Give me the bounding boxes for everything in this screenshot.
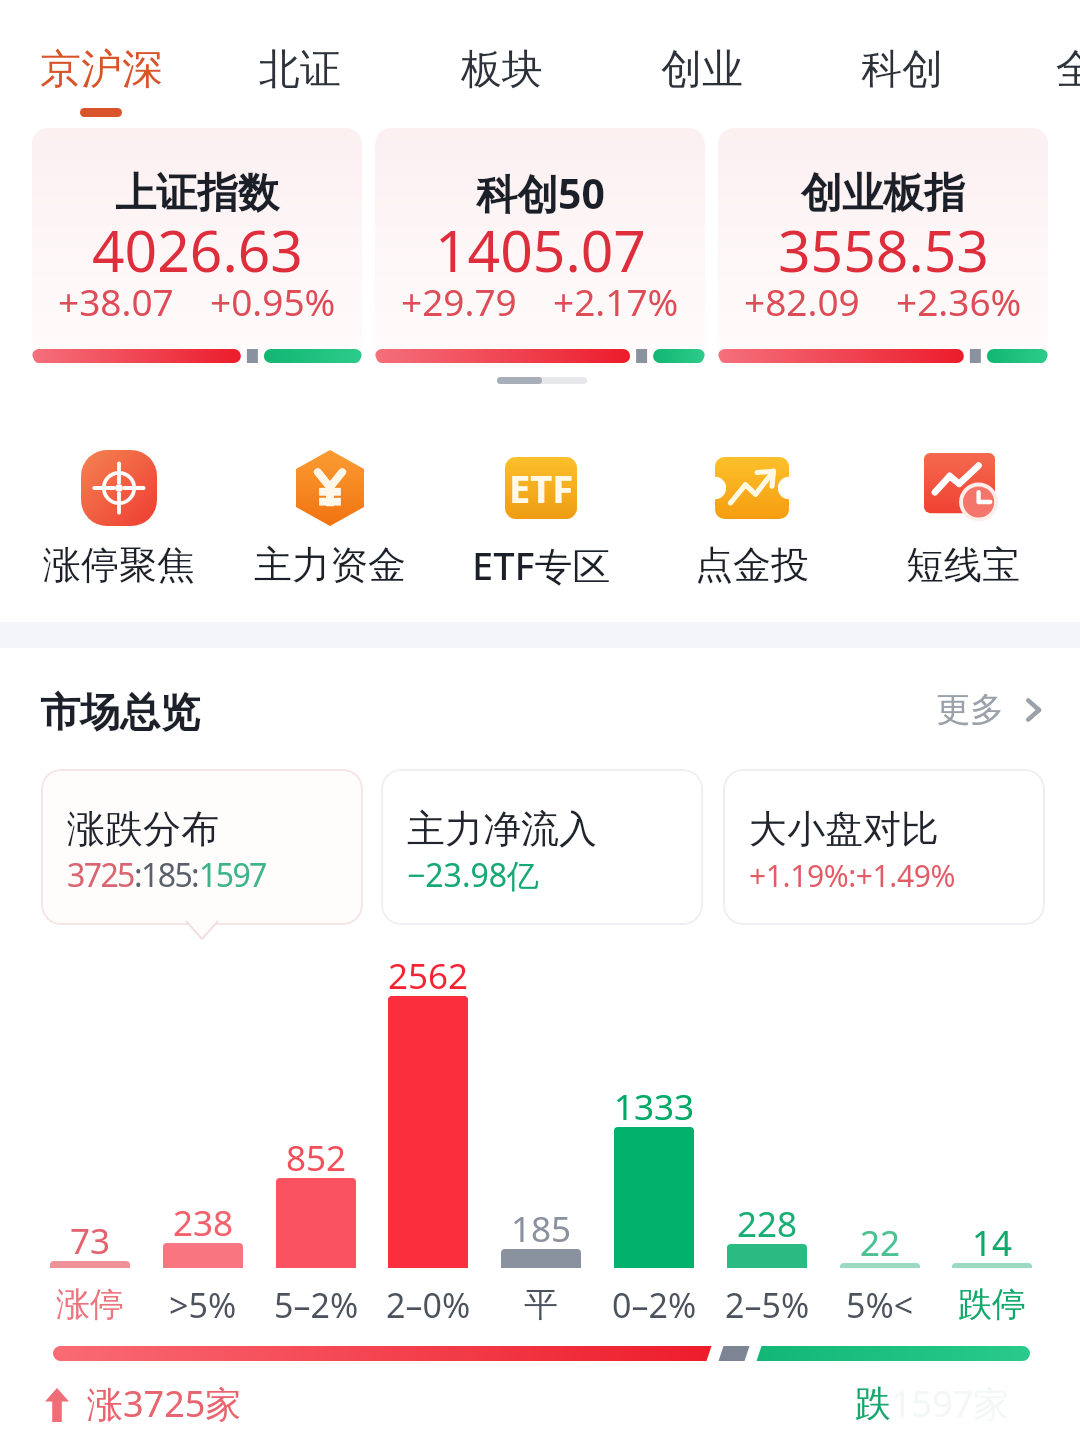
staticText: 3725 [67, 857, 134, 895]
staticText: 点金投 [695, 542, 809, 590]
staticText: 2–5% [725, 1283, 810, 1327]
staticText: 板块 [461, 44, 543, 96]
button[interactable]: 更多 [930, 682, 1054, 738]
staticText: 2–0% [386, 1283, 471, 1327]
staticText: 238 [173, 1201, 234, 1245]
staticText: 创业 [661, 44, 743, 96]
button[interactable]: 京沪深 [21, 25, 181, 115]
staticText: 22 [860, 1221, 901, 1265]
staticText: 市场总览 [40, 684, 200, 740]
staticText: :185: [134, 857, 199, 895]
staticText: +29.79 [401, 278, 517, 326]
button[interactable]: 短线宝 [863, 446, 1063, 606]
staticText: 73 [70, 1219, 111, 1263]
staticText: 涨3725家 [87, 1382, 242, 1428]
button[interactable]: 市场总览 [32, 680, 208, 744]
staticText: 3558.53 [778, 220, 989, 286]
staticText: +1.19%:+1.49% [749, 857, 956, 895]
other: 短线宝 [924, 453, 1002, 523]
button[interactable]: ETF专区 [441, 446, 641, 606]
staticText: 852 [286, 1136, 347, 1180]
staticText: 涨停 [56, 1283, 124, 1327]
staticText: 5%< [846, 1283, 914, 1327]
other: 主力资金 [296, 450, 364, 526]
button[interactable] [41, 769, 363, 925]
staticText: 1597 [199, 857, 266, 895]
staticText: 平 [524, 1283, 558, 1327]
button[interactable]: 全 [996, 25, 1080, 115]
button[interactable]: 科创 [822, 25, 982, 115]
staticText: 涨停聚焦 [43, 542, 195, 590]
button[interactable]: 板块 [422, 25, 582, 115]
button[interactable]: 创业 [622, 25, 782, 115]
button[interactable]: 涨停聚焦 [19, 446, 219, 606]
button[interactable]: 上证指数 [32, 128, 362, 368]
staticText: 短线宝 [906, 542, 1020, 590]
staticText: 2562 [388, 954, 469, 998]
staticText: 4026.63 [92, 220, 303, 286]
staticText: ETF专区 [472, 542, 611, 592]
staticText: 1597家 [891, 1382, 1010, 1428]
staticText: +0.95% [210, 278, 336, 326]
button[interactable]: 创业板指 [718, 128, 1048, 368]
other: ETF专区 [505, 457, 577, 519]
staticText: >5% [169, 1283, 237, 1327]
button[interactable]: 北证 [220, 25, 380, 115]
button[interactable] [723, 769, 1045, 925]
staticText: 跌 [855, 1383, 891, 1427]
staticText: 大小盘对比 [749, 809, 939, 853]
other: 涨停聚焦 [81, 450, 157, 526]
staticText: 跌停 [958, 1283, 1026, 1327]
button[interactable]: 科创50 [375, 128, 705, 368]
staticText: 主力资金 [254, 542, 406, 590]
staticText: 1405.07 [435, 220, 646, 286]
staticText: 涨跌分布 [67, 809, 219, 853]
button[interactable] [381, 769, 703, 925]
staticText: 科创 [861, 44, 943, 96]
other: 点金投 [715, 457, 789, 519]
staticText: 5–2% [274, 1283, 359, 1327]
staticText: +82.09 [744, 278, 860, 326]
staticText: 228 [737, 1202, 798, 1246]
staticText: +2.17% [553, 278, 679, 326]
button[interactable]: 点金投 [652, 446, 852, 606]
staticText: 全 [1056, 44, 1080, 96]
staticText: 科创50 [476, 170, 605, 220]
staticText: 创业板指 [801, 170, 965, 220]
staticText: +38.07 [58, 278, 174, 326]
staticText: 主力净流入 [407, 809, 597, 853]
staticText: −23.98亿 [407, 857, 540, 896]
staticText: 上证指数 [115, 170, 279, 220]
button[interactable]: 主力资金 [230, 446, 430, 606]
staticText: +2.36% [896, 278, 1022, 326]
staticText: 更多 [936, 688, 1004, 732]
staticText: 北证 [259, 44, 341, 96]
staticText: 185 [511, 1207, 572, 1251]
staticText: 京沪深 [40, 44, 163, 96]
staticText: ETF [509, 462, 574, 514]
staticText: 0–2% [612, 1283, 697, 1327]
staticText: 1333 [614, 1085, 695, 1129]
staticText: 14 [972, 1221, 1013, 1265]
